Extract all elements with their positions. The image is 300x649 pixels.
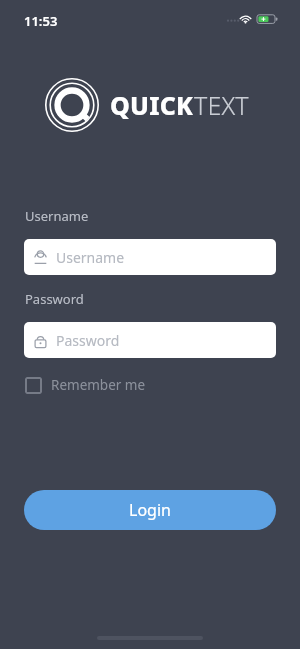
staticText: Username — [56, 248, 125, 267]
button[interactable]: Login — [24, 490, 276, 530]
staticText: 11:53 — [24, 12, 58, 30]
staticText: Remember me — [51, 376, 146, 394]
staticText: Username — [25, 207, 89, 225]
button[interactable]: Username — [24, 239, 276, 275]
other: QuickText logo — [44, 77, 100, 133]
staticText: Login — [129, 499, 171, 521]
staticText: Password — [56, 331, 120, 350]
staticText: TEXT — [194, 88, 249, 122]
button[interactable]: Password — [24, 322, 276, 358]
button[interactable]: Remember me — [24, 374, 146, 396]
staticText: QUICK — [110, 88, 194, 122]
staticText: Password — [25, 290, 84, 308]
